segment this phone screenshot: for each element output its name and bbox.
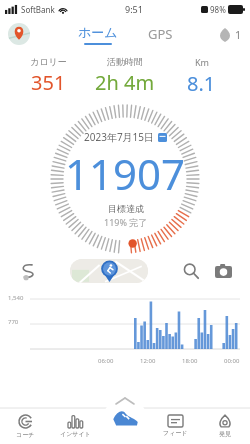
button[interactable]: Search bbox=[178, 258, 204, 284]
staticText: 発見 bbox=[219, 430, 231, 438]
button[interactable]: 活動時間 bbox=[86, 54, 163, 98]
button[interactable]: Camera bbox=[210, 258, 236, 284]
staticText: 1 bbox=[235, 27, 242, 42]
staticText: SoftBank bbox=[21, 4, 55, 15]
staticText: GPS bbox=[148, 25, 173, 43]
staticText: 11907 bbox=[65, 145, 186, 202]
staticText: 351 bbox=[31, 69, 66, 96]
staticText: インサイト bbox=[60, 430, 91, 438]
staticText: 119% 完了 bbox=[104, 216, 148, 228]
staticText: 目標達成 bbox=[108, 203, 144, 214]
staticText: 00:00 bbox=[224, 357, 240, 365]
staticText: 12:00 bbox=[140, 357, 156, 365]
staticText: 9:51 bbox=[125, 3, 143, 15]
button[interactable]: Map profile bbox=[8, 23, 30, 45]
staticText: 98% bbox=[210, 4, 226, 15]
button[interactable]: インサイト bbox=[50, 408, 100, 444]
staticText: 8.1 bbox=[187, 70, 216, 97]
staticText: 770 bbox=[8, 318, 19, 326]
staticText: カロリー bbox=[30, 56, 67, 67]
button[interactable]: カロリー bbox=[10, 54, 86, 98]
staticText: 18:00 bbox=[182, 357, 198, 365]
button[interactable]: Activity bbox=[104, 396, 146, 438]
button[interactable]: コーチ bbox=[0, 408, 50, 444]
button[interactable]: 発見 bbox=[200, 408, 250, 444]
button[interactable]: Route map bbox=[70, 259, 148, 283]
button[interactable]: 1,540 bbox=[8, 293, 242, 365]
staticText: 2023年7月15日 bbox=[84, 130, 155, 144]
button[interactable]: GPS bbox=[142, 23, 179, 45]
staticText: 06:00 bbox=[98, 357, 114, 365]
staticText: フィード bbox=[163, 429, 188, 437]
staticText: ホーム bbox=[78, 24, 118, 40]
button[interactable]: Shoe laces bbox=[14, 258, 40, 284]
button[interactable]: フィード bbox=[150, 408, 200, 444]
staticText: 2h 4m bbox=[95, 69, 155, 96]
button[interactable]: Km bbox=[163, 54, 240, 99]
button[interactable]: ホーム bbox=[72, 24, 124, 45]
staticText: 1,540 bbox=[8, 294, 24, 302]
button[interactable]: Streak bbox=[218, 27, 242, 42]
staticText: Km bbox=[195, 56, 209, 68]
staticText: 活動時間 bbox=[107, 56, 143, 67]
staticText: コーチ bbox=[16, 431, 35, 439]
